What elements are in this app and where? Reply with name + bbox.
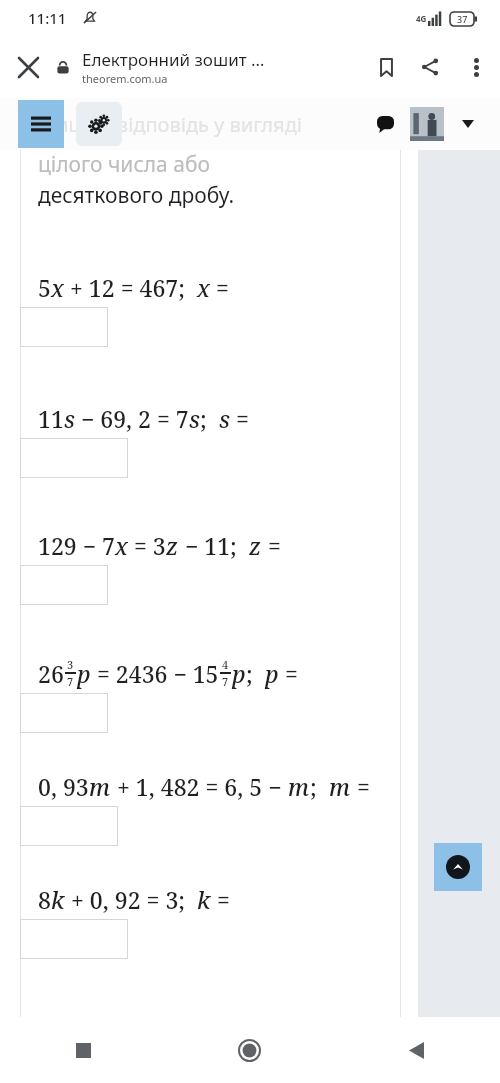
- button[interactable]: [20, 438, 128, 478]
- staticText: s: [189, 403, 200, 434]
- staticText: k: [51, 884, 65, 915]
- button[interactable]: Back: [333, 1017, 500, 1083]
- staticText: − 11;: [179, 530, 249, 561]
- staticText: ;: [246, 658, 265, 689]
- staticText: ;: [310, 771, 329, 802]
- button[interactable]: More options: [452, 43, 500, 91]
- button[interactable]: Bookmark: [364, 45, 408, 89]
- staticText: s: [219, 403, 230, 434]
- staticText: 4G: [416, 13, 427, 24]
- button[interactable]: [20, 806, 118, 846]
- staticText: цілого числа або: [38, 150, 210, 179]
- staticText: 8: [38, 884, 51, 915]
- staticText: theorem.com.ua: [82, 71, 168, 86]
- staticText: + 1, 482 = 6, 5 −: [111, 771, 288, 802]
- staticText: = 3: [128, 530, 166, 561]
- staticText: ;: [200, 403, 219, 434]
- button[interactable]: Share: [408, 45, 452, 89]
- staticText: 0, 93: [38, 771, 89, 802]
- staticText: =: [211, 884, 230, 915]
- button[interactable]: Close: [0, 39, 56, 95]
- staticText: z: [249, 530, 262, 561]
- staticText: x: [51, 272, 64, 303]
- staticText: =: [210, 272, 229, 303]
- staticText: s: [64, 403, 75, 434]
- staticText: + 12 = 467;: [64, 272, 197, 303]
- staticText: − 69, 2 = 7: [75, 403, 189, 434]
- button[interactable]: Expand: [454, 110, 482, 138]
- button[interactable]: Profile photo: [410, 107, 444, 141]
- button[interactable]: Comments: [368, 107, 402, 141]
- staticText: =: [351, 771, 370, 802]
- staticText: p: [232, 658, 246, 689]
- button[interactable]: Scroll to top: [434, 843, 482, 891]
- staticText: x: [197, 272, 210, 303]
- button[interactable]: Menu: [18, 100, 64, 148]
- button[interactable]: [20, 307, 108, 347]
- staticText: ишіть відповідь у вигляді: [56, 111, 302, 138]
- staticText: p: [265, 658, 279, 689]
- staticText: 5: [38, 272, 51, 303]
- staticText: 3: [67, 657, 74, 672]
- staticText: 26: [38, 658, 64, 689]
- staticText: 129 − 7: [38, 530, 115, 561]
- button[interactable]: [20, 919, 128, 959]
- staticText: 7: [67, 674, 74, 689]
- button[interactable]: Електронний зошит …: [82, 48, 364, 86]
- staticText: m: [89, 771, 111, 802]
- staticText: 7: [222, 674, 229, 689]
- staticText: =: [230, 403, 249, 434]
- staticText: 11: [38, 403, 64, 434]
- staticText: 11:11: [28, 8, 67, 28]
- staticText: p: [77, 658, 91, 689]
- button[interactable]: [20, 693, 108, 733]
- button[interactable]: Home: [166, 1017, 333, 1083]
- staticText: =: [262, 530, 281, 561]
- button[interactable]: Settings: [76, 102, 122, 146]
- button[interactable]: Recent apps: [0, 1017, 166, 1083]
- staticText: = 2436 − 15: [91, 658, 219, 689]
- button[interactable]: [20, 565, 108, 605]
- staticText: + 0, 92 = 3;: [65, 884, 197, 915]
- staticText: Електронний зошит …: [82, 48, 265, 71]
- staticText: m: [288, 771, 310, 802]
- staticText: m: [329, 771, 351, 802]
- staticText: 37: [457, 13, 468, 25]
- staticText: z: [166, 530, 179, 561]
- staticText: =: [279, 658, 298, 689]
- staticText: x: [115, 530, 128, 561]
- staticText: десяткового дробу.: [38, 181, 235, 210]
- staticText: 4: [222, 657, 229, 672]
- staticText: k: [197, 884, 211, 915]
